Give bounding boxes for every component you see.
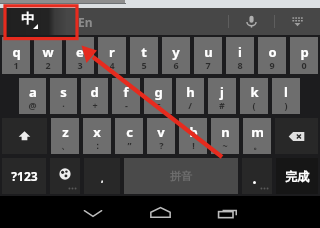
staticText: e [76, 43, 84, 61]
button[interactable]: u [194, 37, 222, 74]
staticText: i [238, 43, 242, 61]
button[interactable]: w [34, 37, 62, 74]
button[interactable]: j [208, 78, 236, 114]
staticText: ” [127, 139, 132, 151]
staticText: k [250, 83, 259, 101]
staticText: b [189, 123, 198, 141]
staticText: s [60, 83, 67, 101]
staticText: g [154, 83, 163, 101]
button[interactable]: q [2, 37, 30, 74]
staticText: 中 [21, 10, 34, 26]
staticText: y [172, 43, 180, 61]
staticText: ?123 [11, 168, 38, 184]
button[interactable]: i [226, 37, 254, 74]
button[interactable]: h [176, 78, 204, 114]
button[interactable]: ?123 [2, 158, 46, 194]
staticText: 拼音 [170, 169, 192, 183]
staticText: q [12, 43, 21, 61]
button[interactable]: Voice input [229, 8, 274, 35]
staticText: h [186, 83, 195, 101]
staticText: ~ [222, 139, 228, 151]
staticText: - [125, 99, 128, 111]
button[interactable]: b [179, 118, 207, 154]
staticText: r [109, 43, 115, 61]
staticText: · [62, 99, 65, 111]
button[interactable]: 中 [4, 8, 66, 35]
button[interactable]: 完成 [276, 158, 318, 194]
button[interactable]: e [66, 37, 94, 74]
staticText: 、 [61, 140, 70, 151]
staticText: 5 [141, 59, 147, 71]
button[interactable]: r [98, 37, 126, 74]
button[interactable]: v [147, 118, 175, 154]
button[interactable]: l [272, 78, 300, 114]
staticText: p [300, 43, 309, 61]
staticText: # [219, 99, 225, 111]
staticText: d [90, 83, 99, 101]
staticText: x [93, 123, 101, 141]
staticText: 8 [237, 59, 243, 71]
staticText: 0 [301, 59, 307, 71]
button[interactable]: Home [137, 196, 183, 228]
button[interactable]: f [112, 78, 140, 114]
staticText: = [155, 99, 161, 111]
staticText: ( [252, 99, 256, 111]
button[interactable]: Recents [204, 196, 250, 228]
button[interactable]: Backspace [275, 118, 318, 154]
button[interactable]: n [211, 118, 239, 154]
staticText: z [62, 123, 69, 141]
button[interactable]: t [130, 37, 158, 74]
button[interactable]: m [243, 118, 271, 154]
staticText: 2 [45, 59, 51, 71]
staticText: 完成 [285, 169, 309, 184]
staticText: m [251, 123, 264, 141]
button[interactable]: x [83, 118, 111, 154]
button[interactable]: p [290, 37, 318, 74]
staticText: ) [284, 99, 288, 111]
button[interactable]: k [240, 78, 268, 114]
button[interactable]: d [81, 78, 108, 114]
staticText: + [92, 99, 98, 111]
staticText: En [78, 14, 93, 30]
button[interactable]: c [115, 118, 143, 154]
staticText: 3 [77, 59, 83, 71]
button[interactable]: , [84, 158, 120, 194]
staticText: u [204, 43, 213, 61]
button[interactable]: o [258, 37, 286, 74]
staticText: ! [192, 139, 195, 151]
staticText: 。 [253, 140, 262, 151]
staticText: / [188, 99, 192, 111]
staticText: 4 [109, 59, 115, 71]
staticText: 6 [173, 59, 179, 71]
staticText: 1 [13, 59, 19, 71]
staticText: t [141, 43, 147, 61]
staticText: f [123, 83, 129, 101]
staticText: , [101, 172, 104, 184]
staticText: n [221, 123, 230, 141]
button[interactable]: s [50, 78, 77, 114]
button[interactable]: g [144, 78, 172, 114]
staticText: w [42, 43, 54, 61]
button[interactable]: Change language [50, 158, 80, 194]
staticText: ： [93, 140, 102, 151]
button[interactable]: Hide keyboard [275, 8, 320, 35]
staticText: v [157, 123, 165, 141]
staticText: l [284, 83, 288, 101]
staticText: @ [28, 99, 37, 111]
button[interactable]: En [78, 8, 118, 35]
button[interactable] [242, 158, 272, 194]
button[interactable]: Back [70, 196, 116, 228]
button[interactable]: a [19, 78, 46, 114]
staticText: a [29, 83, 37, 101]
staticText: ? [159, 139, 164, 151]
staticText: 9 [269, 59, 275, 71]
staticText: o [268, 43, 277, 61]
button[interactable]: Shift [2, 118, 47, 154]
staticText: j [220, 83, 224, 101]
button[interactable]: z [51, 118, 79, 154]
staticText: 7 [205, 59, 211, 71]
staticText: c [126, 123, 133, 141]
button[interactable]: y [162, 37, 190, 74]
button[interactable]: 拼音 [124, 158, 238, 194]
